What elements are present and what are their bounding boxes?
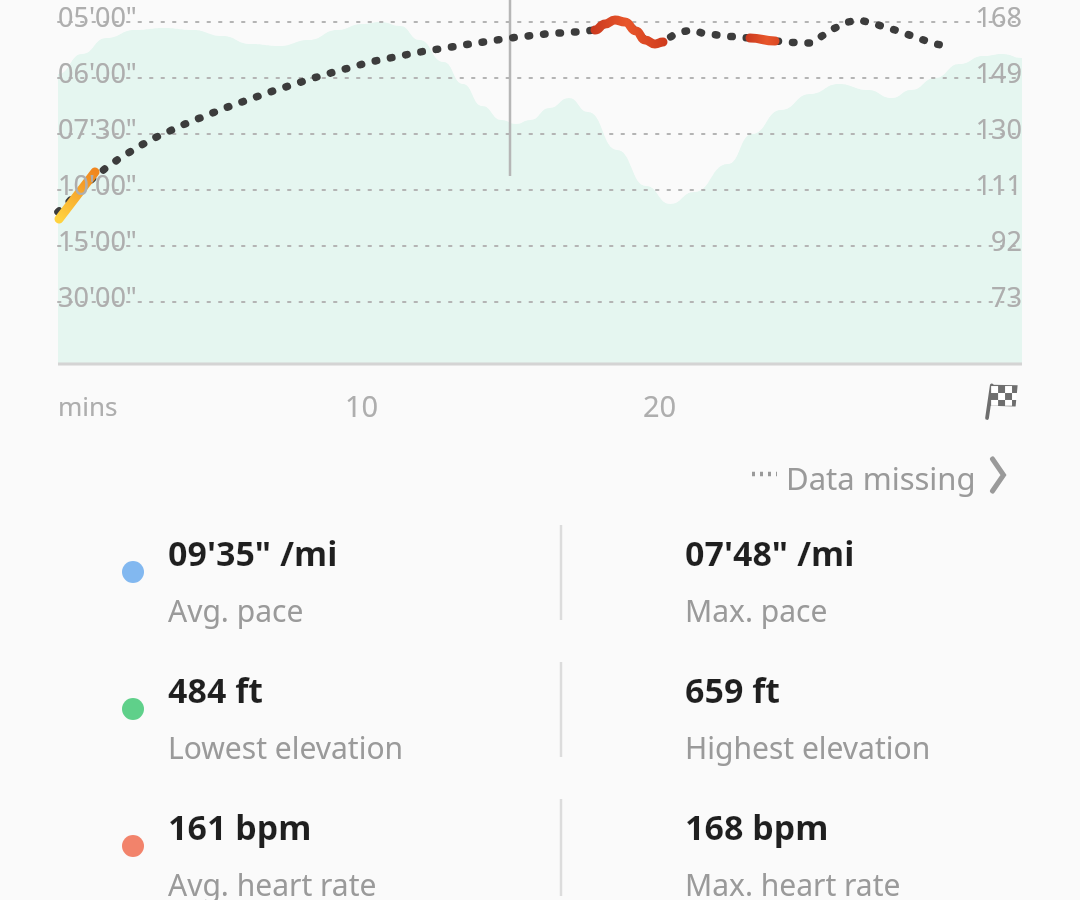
button[interactable]: 168 bpm bbox=[685, 804, 1055, 900]
staticText: 10'00" bbox=[58, 166, 137, 203]
staticText: 161 bpm bbox=[168, 804, 312, 850]
staticText: Max. pace bbox=[685, 590, 828, 631]
staticText: 20 bbox=[643, 386, 677, 425]
staticText: Avg. pace bbox=[168, 590, 304, 631]
button[interactable]: 09'35" /mi bbox=[168, 530, 538, 640]
staticText: 149 bbox=[882, 54, 1022, 91]
staticText: 05'00" bbox=[58, 0, 137, 35]
staticText: 15'00" bbox=[58, 222, 137, 259]
staticText: 168 bbox=[882, 0, 1022, 35]
button[interactable]: 161 bpm bbox=[168, 804, 538, 900]
staticText: 06'00" bbox=[58, 54, 137, 91]
staticText: Lowest elevation bbox=[168, 727, 404, 768]
staticText: 07'48" /mi bbox=[685, 530, 855, 576]
staticText: Max. heart rate bbox=[685, 864, 901, 900]
staticText: 30'00" bbox=[58, 278, 137, 315]
button[interactable]: 07'48" /mi bbox=[685, 530, 1055, 640]
staticText: Highest elevation bbox=[685, 727, 931, 768]
staticText: Avg. heart rate bbox=[168, 864, 377, 900]
staticText: 09'35" /mi bbox=[168, 530, 338, 576]
staticText: mins bbox=[58, 388, 118, 423]
staticText: 659 ft bbox=[685, 667, 781, 713]
staticText: 168 bpm bbox=[685, 804, 829, 850]
staticText: 73 bbox=[882, 278, 1022, 315]
staticText: 92 bbox=[882, 222, 1022, 259]
button[interactable]: Data missing bbox=[740, 450, 1025, 502]
staticText: 07'30" bbox=[58, 110, 137, 147]
staticText: 484 ft bbox=[168, 667, 264, 713]
button[interactable]: Laps bbox=[978, 380, 1026, 422]
button[interactable]: 659 ft bbox=[685, 667, 1055, 777]
button[interactable]: 484 ft bbox=[168, 667, 538, 777]
staticText: 10 bbox=[345, 386, 379, 425]
staticText: 130 bbox=[882, 110, 1022, 147]
staticText: Data missing bbox=[786, 457, 976, 499]
staticText: 111 bbox=[882, 166, 1022, 203]
